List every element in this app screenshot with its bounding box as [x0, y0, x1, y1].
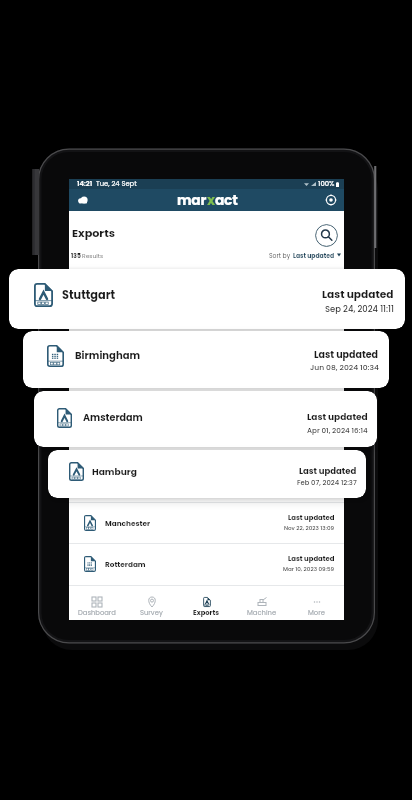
staticText: Last updated — [322, 287, 394, 302]
staticText: x — [207, 191, 215, 210]
button[interactable]: Amsterdam — [34, 391, 377, 447]
button[interactable]: Machine — [234, 585, 289, 620]
staticText: Stuttgart — [62, 287, 116, 303]
staticText: Last updated — [307, 411, 368, 424]
staticText: Dashboard — [78, 608, 116, 618]
staticText: 135 — [71, 252, 81, 260]
button[interactable]: Manchester — [69, 502, 344, 543]
button[interactable]: Birmingham — [23, 331, 389, 388]
staticText: Last updated — [288, 513, 335, 523]
staticText: Rotterdam — [105, 559, 146, 569]
staticText: act — [215, 191, 238, 210]
button[interactable]: Rotterdam — [69, 543, 344, 584]
staticText: Last updated — [293, 252, 335, 261]
staticText: Exports — [72, 225, 115, 241]
staticText: Manchester — [105, 518, 151, 528]
button[interactable]: Sort by — [269, 252, 341, 261]
staticText: Mar 10, 2023 09:59 — [283, 565, 335, 573]
staticText: Tue, 24 Sept — [96, 179, 137, 189]
staticText: Hamburg — [92, 465, 137, 478]
staticText: Machine — [247, 608, 277, 618]
staticText: 100% — [318, 179, 335, 189]
button[interactable]: Cloud sync — [76, 193, 90, 207]
button[interactable]: More — [289, 585, 344, 620]
staticText: Amsterdam — [83, 411, 143, 424]
button[interactable]: Survey — [124, 585, 179, 620]
staticText: Survey — [140, 608, 163, 618]
staticText: Exports — [193, 608, 220, 618]
staticText: Results — [82, 252, 104, 260]
button[interactable]: Hamburg — [48, 450, 366, 498]
staticText: mar — [177, 191, 207, 210]
staticText: Jun 08, 2024 10:34 — [310, 362, 379, 373]
staticText: Sep 24, 2024 11:11 — [325, 303, 394, 315]
button[interactable]: Locate — [325, 194, 337, 206]
staticText: More — [308, 608, 325, 618]
button[interactable]: Search — [315, 224, 338, 247]
staticText: Nov 22, 2023 13:09 — [284, 524, 335, 532]
staticText: Birmingham — [75, 348, 141, 362]
staticText: Last updated — [288, 554, 335, 564]
staticText: Feb 07, 2024 12:37 — [297, 478, 357, 488]
button[interactable]: Exports — [179, 585, 234, 620]
button[interactable]: Dashboard — [69, 585, 124, 620]
staticText: 14:21 — [77, 179, 93, 189]
staticText: Last updated — [314, 348, 379, 361]
staticText: Apr 01, 2024 16:14 — [307, 425, 368, 435]
button[interactable]: Stuttgart — [9, 269, 405, 329]
staticText: Sort by — [269, 252, 291, 261]
staticText: Last updated — [299, 465, 357, 477]
